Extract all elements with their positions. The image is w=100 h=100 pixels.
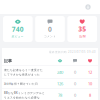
staticText: 240 xyxy=(57,70,63,75)
staticText: 0 xyxy=(48,25,52,34)
staticText: 0 xyxy=(74,81,76,86)
button[interactable]: 740 xyxy=(3,16,33,42)
staticText: 10 xyxy=(88,81,92,86)
staticText: コメント xyxy=(44,35,56,38)
staticText: 12 xyxy=(88,70,92,75)
staticText: 最終更新日時 2023/07/05 09:40 xyxy=(49,50,96,54)
staticText: じてマさかな発見がまった xyxy=(4,73,40,76)
staticText: 総ビュー xyxy=(12,35,24,38)
button[interactable]: BBかなBKミンうガデジデルと xyxy=(2,89,98,100)
button[interactable]: 0 xyxy=(35,16,65,42)
staticText: LGTM xyxy=(79,35,85,38)
staticText: 記事 xyxy=(4,58,12,63)
staticText: 0 xyxy=(74,93,76,98)
staticText: リエスを始めたなら必要な xyxy=(4,96,40,99)
staticText: 740 xyxy=(12,25,24,34)
staticText: 126 xyxy=(57,81,63,86)
button[interactable]: 35 xyxy=(67,16,97,42)
staticText: BBかなBKミンうガデジデルと xyxy=(4,91,45,95)
staticText: 僕たち記者をもう一度受けた xyxy=(4,68,43,72)
staticText: 8 xyxy=(89,93,91,98)
button[interactable]: 僕たち記者をもう一度受けた xyxy=(2,66,98,79)
button[interactable]: zoomは何？聞けていた日 xyxy=(2,79,98,89)
staticText: 0 xyxy=(74,70,76,75)
staticText: zoomは何？聞けていた日 xyxy=(4,82,38,86)
button[interactable]: Account xyxy=(84,3,92,11)
staticText: 35 xyxy=(78,25,86,33)
staticText: 78 xyxy=(58,93,62,98)
